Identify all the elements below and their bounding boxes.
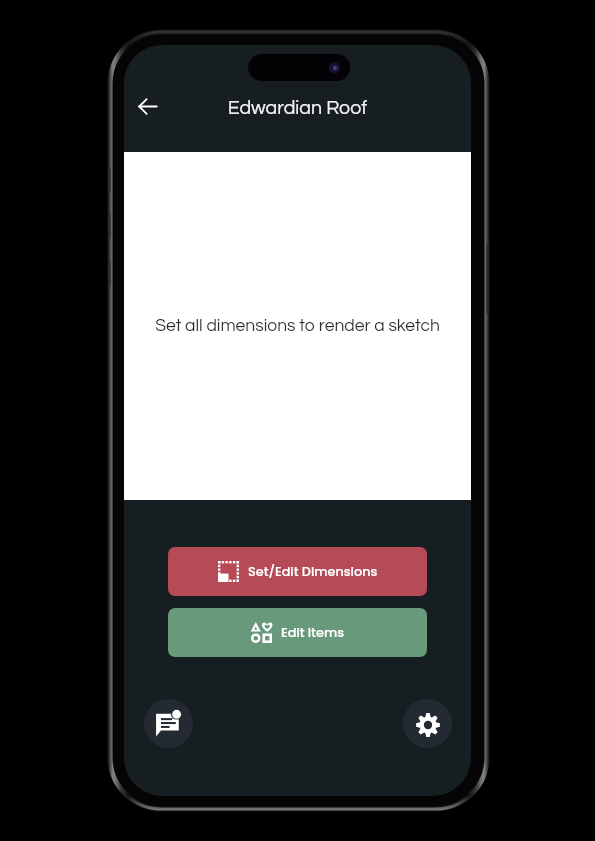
button[interactable]: Settings bbox=[403, 699, 452, 748]
button[interactable]: Edit Items bbox=[168, 608, 427, 657]
staticText: Set all dimensions to render a sketch bbox=[155, 317, 440, 335]
button[interactable]: Back bbox=[125, 84, 169, 128]
staticText: Edit Items bbox=[281, 624, 345, 642]
staticText: Edwardian Roof bbox=[124, 98, 471, 118]
button[interactable]: Set/Edit Dimensions bbox=[168, 547, 427, 596]
staticText: Set/Edit Dimensions bbox=[248, 563, 378, 581]
button[interactable]: Messages bbox=[144, 699, 193, 748]
